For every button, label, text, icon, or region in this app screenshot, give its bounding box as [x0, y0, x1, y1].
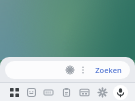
- button[interactable]: GIF: [40, 83, 57, 101]
- button[interactable]: Clipboard: [57, 83, 75, 101]
- button[interactable]: AI assist: [5, 61, 130, 79]
- button[interactable]: Zoeken: [91, 64, 126, 76]
- button[interactable]: Apps: [6, 83, 23, 101]
- button[interactable]: Settings: [93, 83, 111, 101]
- button[interactable]: More options: [77, 64, 89, 76]
- button[interactable]: Translate: [75, 83, 93, 101]
- button[interactable]: Stickers: [23, 83, 40, 101]
- button[interactable]: AI assist: [63, 63, 77, 77]
- staticText: Zoeken: [95, 65, 122, 75]
- button[interactable]: Voice input: [113, 85, 128, 100]
